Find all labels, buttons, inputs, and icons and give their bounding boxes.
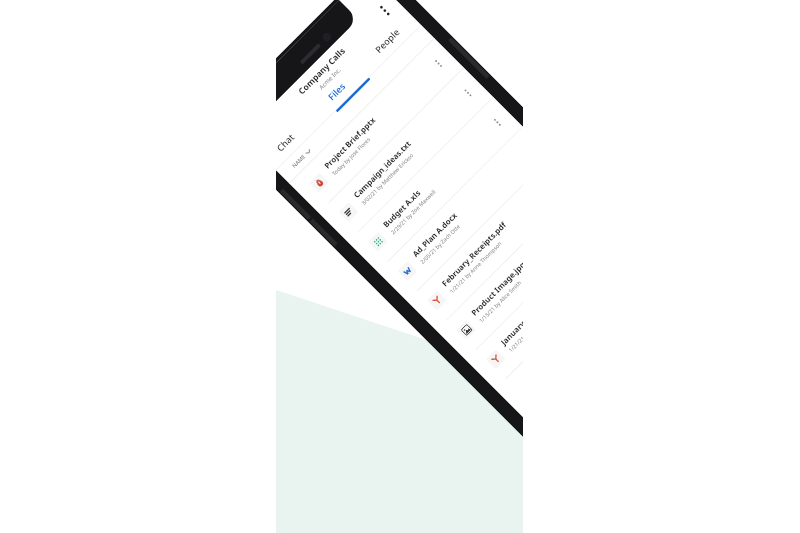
button[interactable]: More — [485, 109, 510, 135]
staticText: Ad_Plan A.docx — [410, 210, 459, 259]
button[interactable]: Project Brief.pptx — [289, 38, 464, 213]
staticText: 1/21/21 by Anne Thompson — [507, 298, 523, 353]
button[interactable]: More — [455, 80, 481, 106]
staticText: Company Calls — [296, 45, 348, 97]
staticText: People — [372, 26, 402, 55]
staticText: NAME — [290, 153, 307, 169]
staticText: Today by Jose Flores — [330, 135, 372, 177]
staticText: February_Receipts.pdf — [439, 219, 508, 289]
staticText: Product Image.jpg — [469, 259, 523, 318]
button[interactable]: Campaign_ideas.txt — [319, 68, 493, 242]
button[interactable]: Files — [304, 59, 369, 124]
button[interactable]: Ad_Plan A.docx — [378, 127, 523, 301]
staticText: Project Brief.pptx — [322, 115, 378, 171]
staticText: 1/21/21 by Anne Thompson — [448, 240, 503, 295]
button[interactable]: More — [426, 51, 451, 76]
button[interactable]: Chat — [276, 110, 318, 168]
staticText: Files — [325, 80, 348, 103]
button[interactable]: Product Image.jpg — [436, 185, 523, 360]
staticText: January_Receipts.pdf — [498, 282, 523, 347]
button[interactable]: February_Receipts.pdf — [407, 156, 523, 330]
staticText: 2/29/21 by Zoe Maxwell — [389, 188, 437, 236]
button[interactable]: Budget A.xls — [348, 97, 522, 271]
staticText: Chat — [276, 131, 297, 154]
staticText: Budget A.xls — [381, 187, 423, 230]
staticText: Campaign_ideas.txt — [351, 138, 413, 200]
staticText: 2/05/21 by Zach Otte — [418, 222, 462, 265]
staticText: 1/15/21 by Alice Smith — [477, 279, 522, 324]
button[interactable]: More options — [368, 0, 402, 28]
button[interactable]: People — [355, 9, 419, 73]
staticText: Acme Inc. — [317, 66, 343, 91]
staticText: 3/02/21 by Matthew Erickso — [360, 151, 415, 206]
button[interactable]: January_Receipts.pdf — [466, 215, 523, 389]
